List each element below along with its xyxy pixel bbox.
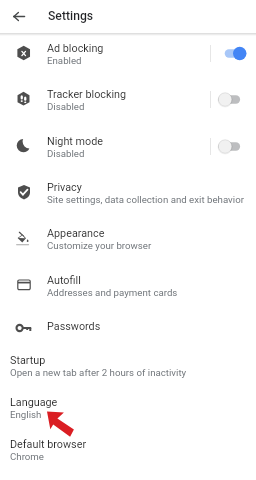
staticText: Customize your browser	[47, 240, 152, 251]
button[interactable]: Default browser	[0, 429, 256, 474]
staticText: Ad blocking	[47, 42, 104, 55]
staticText: Settings	[48, 9, 94, 23]
button[interactable]: Appearance	[0, 218, 256, 264]
button[interactable]: Ad blocking	[0, 33, 256, 79]
staticText: Appearance	[47, 227, 105, 240]
button[interactable]: Privacy	[0, 172, 256, 218]
button[interactable]: Turn off	[216, 44, 250, 63]
button[interactable]: Turn on	[216, 90, 250, 109]
button[interactable]: Language	[0, 387, 256, 429]
staticText: Chrome	[10, 451, 44, 462]
staticText: Enabled	[47, 55, 82, 66]
button[interactable]: Passwords	[0, 311, 256, 345]
button[interactable]: Turn on	[216, 137, 250, 156]
staticText: Open a new tab after 2 hours of inactivi…	[10, 367, 187, 378]
staticText: Addresses and payment cards	[47, 287, 178, 298]
button[interactable]: Startup	[0, 345, 256, 387]
staticText: Autofill	[47, 274, 81, 287]
button[interactable]: Night mode	[0, 126, 256, 172]
staticText: Passwords	[47, 320, 101, 333]
button[interactable]: Autofill	[0, 265, 256, 311]
staticText: Disabled	[47, 148, 85, 159]
staticText: Tracker blocking	[47, 88, 127, 101]
staticText: Default browser	[10, 438, 87, 451]
staticText: Night mode	[47, 135, 103, 148]
staticText: Disabled	[47, 101, 85, 112]
staticText: Startup	[10, 354, 46, 367]
staticText: Privacy	[47, 181, 82, 194]
button[interactable]: Back	[5, 3, 32, 30]
button[interactable]: Tracker blocking	[0, 79, 256, 125]
staticText: Language	[10, 396, 58, 409]
staticText: Site settings, data collection and exit …	[47, 194, 244, 205]
staticText: English	[10, 409, 42, 420]
